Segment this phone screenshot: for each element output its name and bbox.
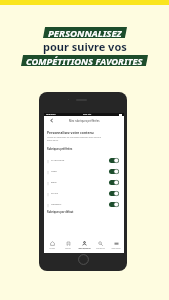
staticText: Personnalisez votre contenu — [47, 130, 94, 134]
staticText: Rubriques préférées — [47, 147, 73, 150]
staticText: 4:06 PM — [83, 113, 92, 116]
button[interactable]: Pro D2 — [44, 188, 124, 199]
button[interactable]: Recherche — [92, 241, 108, 249]
button[interactable]: Bleus — [44, 177, 124, 188]
staticText: Favoris — [65, 247, 71, 249]
button[interactable]: Vidéo — [44, 166, 124, 177]
button[interactable]: Toggle Pro D2 — [109, 191, 119, 196]
button[interactable]: Toggle Vidéo — [109, 169, 119, 174]
staticText: PERSONNALISEZ — [48, 27, 122, 38]
button[interactable]: Mes rubriques — [76, 241, 92, 249]
staticText: COMPÉTITIONS FAVORITES — [26, 55, 143, 66]
staticText: Mon Rugby — [111, 247, 121, 249]
staticText: Rubriques par défaut — [47, 210, 74, 213]
button[interactable]: XV de France — [44, 155, 124, 166]
staticText: Recherche — [96, 247, 105, 249]
staticText: Vidéo — [51, 170, 57, 173]
button[interactable]: Toggle XV de France — [109, 158, 119, 163]
staticText: pour suivre vos — [43, 39, 127, 54]
staticText: Mes rubriques — [78, 247, 91, 249]
button[interactable]: Mon Rugby — [108, 241, 124, 249]
button[interactable]: Favoris — [60, 241, 76, 249]
staticText: Mes rubriques préférées — [69, 119, 100, 123]
button[interactable]: Home — [78, 254, 89, 265]
staticText: Activez et désactivez les rubriques préf… — [47, 136, 103, 142]
staticText: Pro D2 — [51, 192, 58, 195]
staticText: Accueil — [49, 247, 55, 249]
button[interactable]: Toggle Transferts — [109, 202, 119, 207]
button[interactable]: Back — [49, 118, 54, 123]
staticText: Bleus — [51, 181, 57, 184]
staticText: Golf bleu — [46, 113, 56, 116]
staticText: XV de France — [51, 159, 65, 162]
button[interactable]: Transferts — [44, 199, 124, 210]
staticText: Transferts — [51, 203, 62, 206]
button[interactable]: Toggle Bleus — [109, 180, 119, 185]
button[interactable]: Accueil — [44, 241, 60, 249]
